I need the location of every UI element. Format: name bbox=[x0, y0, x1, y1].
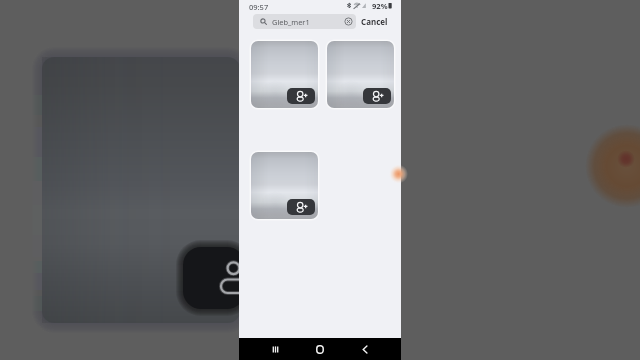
button[interactable]: Cancel bbox=[356, 16, 393, 27]
staticText: 92% bbox=[372, 1, 388, 11]
button[interactable]: Add friend bbox=[287, 199, 315, 215]
button[interactable]: Add friend bbox=[327, 41, 394, 108]
button[interactable]: Add friend bbox=[251, 41, 318, 108]
button[interactable]: Add friend bbox=[363, 88, 391, 104]
button[interactable]: Back bbox=[342, 338, 387, 360]
button[interactable]: Add friend bbox=[287, 88, 315, 104]
button[interactable]: Clear bbox=[344, 17, 353, 26]
button[interactable]: Gleb_mer1 bbox=[253, 14, 356, 29]
button[interactable]: Recents bbox=[253, 338, 297, 360]
staticText: 09:57 bbox=[249, 2, 269, 12]
staticText: Gleb_mer1 bbox=[272, 17, 310, 27]
button[interactable]: Add friend bbox=[251, 152, 318, 219]
staticText: Cancel bbox=[361, 16, 388, 27]
button[interactable]: Home bbox=[297, 338, 342, 360]
